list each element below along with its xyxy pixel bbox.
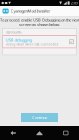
staticText: Continue — [32, 115, 47, 120]
staticText: CyanogenMod Installer — [10, 8, 50, 14]
button[interactable]: Back — [0, 126, 26, 140]
staticText: screen as shown below. — [19, 22, 60, 27]
staticText: DEBUGGING — [5, 31, 21, 34]
staticText: 2:49 — [70, 0, 77, 6]
staticText: To proceed, enable USB Debugging on the … — [0, 17, 79, 22]
staticText: USB debugging — [5, 37, 31, 42]
button[interactable]: Recent apps — [53, 126, 79, 140]
button[interactable]: Continue — [21, 113, 58, 122]
staticText: Debug mode when USB is connected — [5, 43, 58, 46]
button[interactable]: Home — [26, 126, 53, 140]
